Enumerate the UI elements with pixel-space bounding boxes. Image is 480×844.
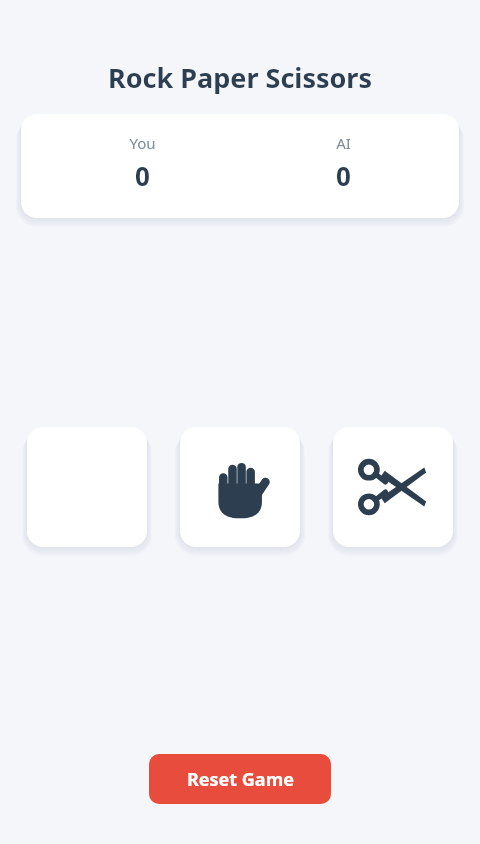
staticText: AI	[336, 133, 351, 153]
staticText: 0	[135, 158, 150, 193]
button[interactable]: Reset Game	[149, 754, 331, 804]
staticText: Reset Game	[187, 767, 294, 792]
button[interactable]: Paper	[180, 427, 300, 547]
button[interactable]: Scissors	[333, 427, 453, 547]
staticText: You	[129, 133, 156, 153]
staticText: 0	[336, 158, 351, 193]
staticText: Rock Paper Scissors	[108, 59, 372, 96]
